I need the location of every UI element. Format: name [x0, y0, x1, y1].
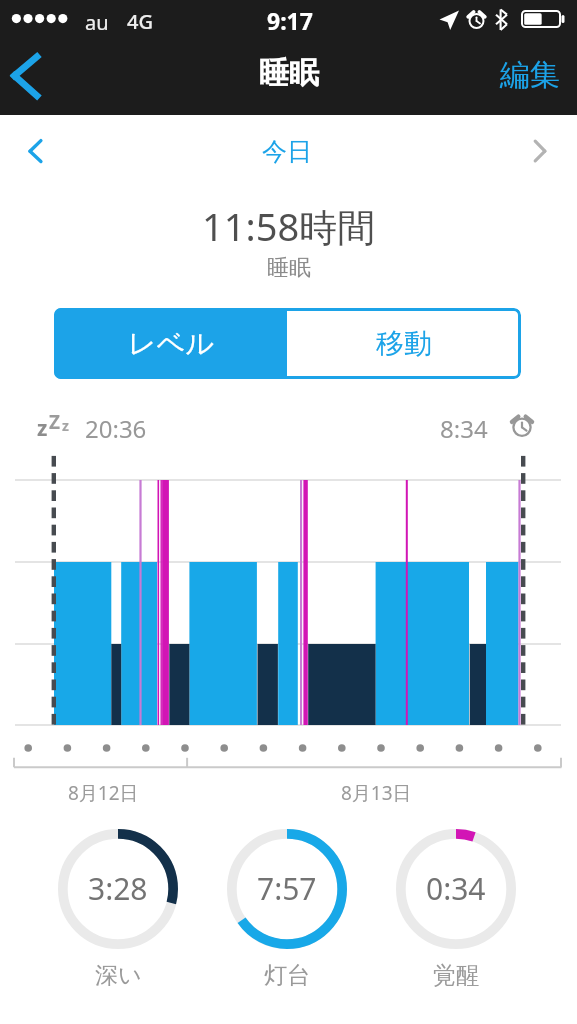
staticText: 睡眠	[267, 254, 311, 282]
staticText: 移動	[376, 326, 432, 361]
button[interactable]: 編集	[489, 41, 577, 115]
button[interactable]: 移動	[287, 308, 521, 379]
staticText: 0:34	[426, 868, 486, 909]
staticText: 7:57	[257, 868, 317, 909]
staticText: 9:17	[267, 5, 313, 36]
staticText: 編集	[500, 56, 560, 94]
button[interactable]: Next day	[505, 115, 577, 185]
staticText: au	[85, 9, 109, 36]
staticText: 深い	[95, 961, 142, 990]
staticText: 今日	[262, 136, 312, 167]
button[interactable]: Previous day	[0, 115, 72, 185]
staticText: z	[37, 414, 48, 443]
staticText: 3:28	[88, 868, 148, 909]
staticText: 灯台	[264, 961, 310, 990]
button[interactable]: レベル	[54, 308, 287, 379]
staticText: 8:34	[440, 412, 488, 445]
staticText: 覚醒	[433, 961, 479, 990]
staticText: 8月12日	[68, 780, 139, 806]
staticText: 20:36	[85, 412, 147, 445]
button[interactable]: Back	[0, 41, 60, 115]
staticText: レベル	[128, 326, 214, 361]
staticText: 8月13日	[341, 780, 412, 806]
staticText: 4G	[127, 8, 153, 35]
staticText: 睡眠	[259, 54, 319, 92]
staticText: 11:58時間	[202, 200, 376, 252]
staticText: Z	[49, 409, 61, 435]
staticText: z	[62, 416, 69, 435]
